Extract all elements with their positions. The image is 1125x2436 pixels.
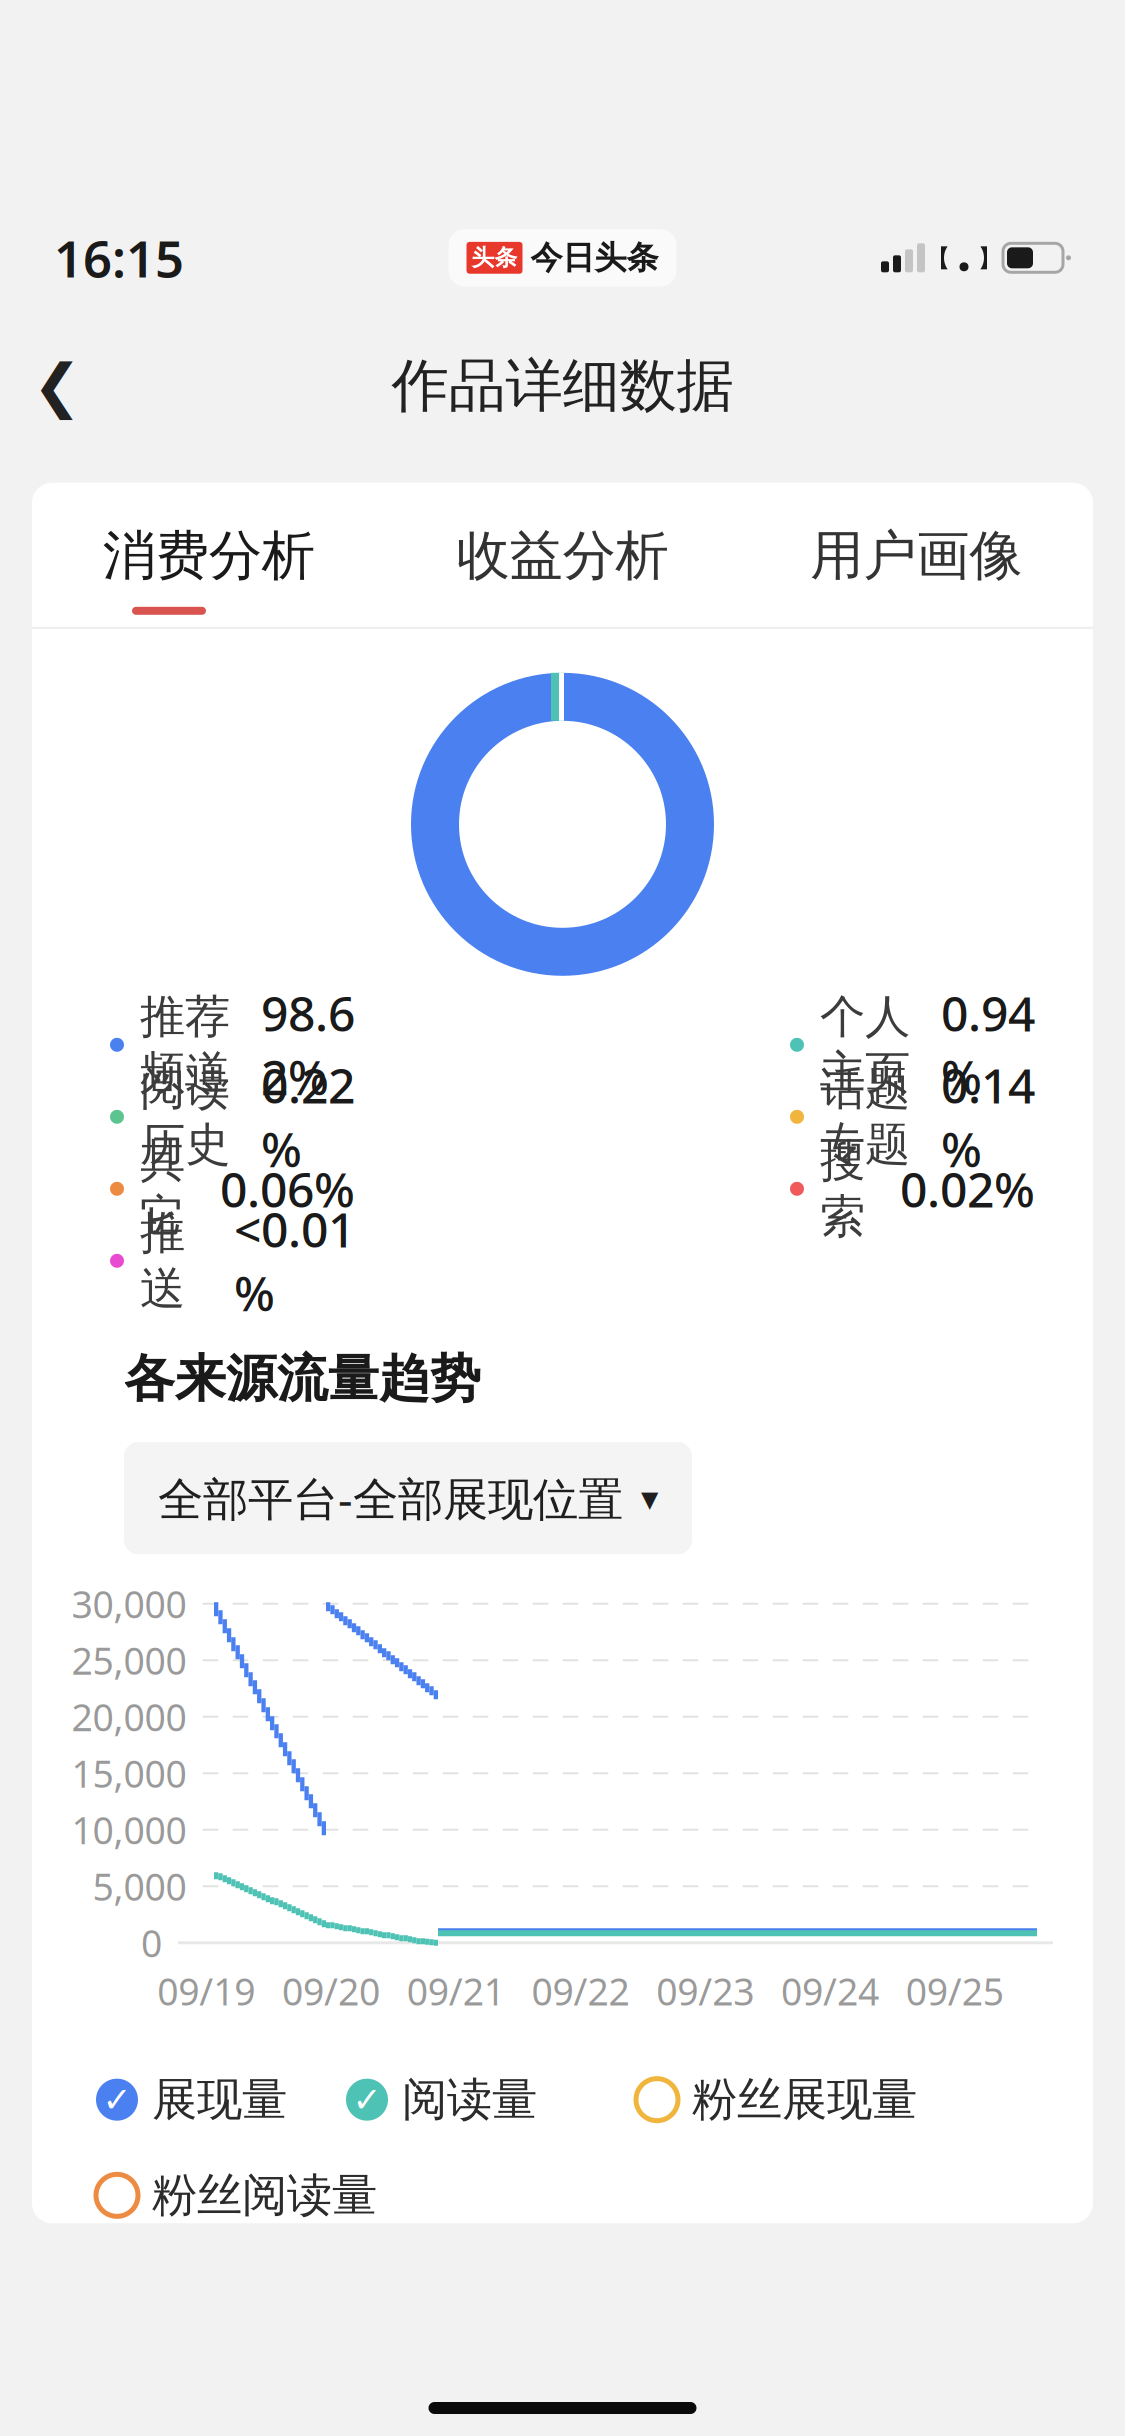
staticText: 09/19 (157, 1966, 255, 2016)
staticText: 头条 (471, 244, 517, 272)
staticText: 其它 (140, 1133, 185, 1244)
staticText: 15,000 (71, 1748, 186, 1798)
staticText: 30,000 (71, 1579, 186, 1629)
button[interactable]: 消费分析 (32, 527, 386, 585)
staticText: <0.01% (234, 1197, 355, 1325)
staticText: ✓ (352, 2080, 381, 2119)
staticText: 09/24 (781, 1966, 879, 2016)
staticText: 作品详细数据 (391, 351, 733, 421)
staticText: 09/21 (407, 1966, 505, 2016)
button[interactable]: 粉丝阅读量 (96, 2167, 377, 2223)
staticText: 25,000 (71, 1635, 186, 1685)
staticText: 09/25 (906, 1966, 1004, 2016)
staticText: 98.62% (261, 981, 355, 1109)
staticText: 09/22 (531, 1966, 629, 2016)
staticText: 0 (141, 1918, 162, 1968)
staticText: 10,000 (71, 1805, 186, 1855)
button[interactable]: Back (12, 341, 102, 431)
staticText: 0.06% (220, 1157, 355, 1221)
staticText: 粉丝展现量 (692, 2072, 917, 2127)
staticText: 消费分析 (103, 523, 315, 589)
staticText: 0.02% (900, 1157, 1035, 1221)
staticText: 收益分析 (456, 523, 668, 589)
staticText: 09/23 (656, 1966, 754, 2016)
staticText: ▾ (641, 1478, 658, 1518)
staticText: 09/20 (282, 1966, 380, 2016)
staticText: 展现量 (152, 2072, 287, 2127)
button[interactable]: ✓ (346, 2072, 537, 2127)
staticText: 16:15 (54, 224, 184, 291)
staticText: 全部平台-全部展现位置 (158, 1468, 623, 1528)
staticText: 用户画像 (810, 523, 1022, 589)
staticText: 推荐频道 (140, 989, 230, 1100)
button[interactable]: 全部平台-全部展现位置 (124, 1442, 692, 1554)
staticText: 阅读历史 (140, 1061, 230, 1172)
staticText: ❮ (32, 352, 81, 419)
staticText: 5,000 (92, 1861, 186, 1911)
staticText: 搜索 (820, 1133, 865, 1244)
staticText: 粉丝阅读量 (152, 2167, 377, 2223)
button[interactable]: 粉丝展现量 (636, 2072, 917, 2127)
staticText: 个人主页 (820, 989, 910, 1100)
staticText: 推送 (140, 1205, 185, 1316)
button[interactable]: 收益分析 (386, 527, 739, 585)
staticText: 话题专题 (820, 1061, 910, 1172)
staticText: 20,000 (71, 1692, 186, 1742)
staticText: 0.22% (261, 1053, 355, 1181)
button[interactable]: 用户画像 (739, 527, 1093, 585)
staticText: 各来源流量趋势 (124, 1348, 481, 1410)
staticText: 今日头条 (530, 238, 658, 277)
staticText: 0.94% (941, 981, 1035, 1109)
staticText: 阅读量 (402, 2072, 537, 2127)
staticText: 0.14% (941, 1053, 1035, 1181)
staticText: ✓ (102, 2080, 131, 2119)
button[interactable]: ✓ (96, 2072, 287, 2127)
